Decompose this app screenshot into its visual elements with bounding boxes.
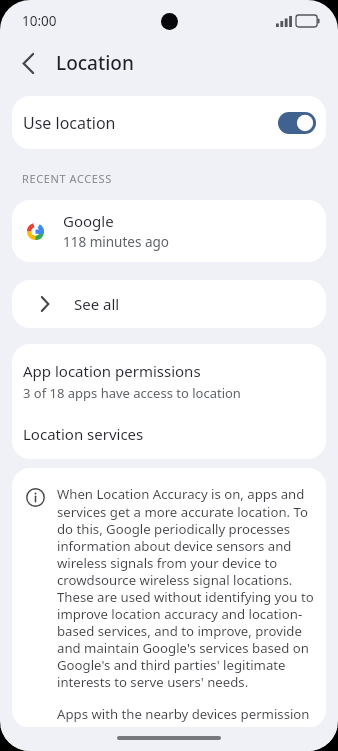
staticText: 3 of 18 apps have access to location bbox=[23, 384, 241, 402]
staticText: 10:00 bbox=[22, 12, 57, 30]
staticText: 118 minutes ago bbox=[63, 233, 169, 251]
staticText: Google bbox=[63, 211, 114, 231]
staticText: App location permissions bbox=[23, 361, 201, 381]
button[interactable]: Location services bbox=[12, 408, 326, 459]
staticText: RECENT ACCESS bbox=[22, 171, 112, 186]
button[interactable]: Use location bbox=[12, 96, 326, 149]
staticText: Apps with the nearby devices permission bbox=[57, 705, 310, 723]
button[interactable]: See all bbox=[12, 280, 326, 328]
staticText: Location services bbox=[23, 424, 144, 444]
button[interactable]: App location permissions bbox=[12, 344, 326, 408]
staticText: See all bbox=[74, 294, 120, 314]
staticText: Use location bbox=[23, 112, 116, 134]
staticText: When Location Accuracy is on, apps and s… bbox=[57, 485, 320, 690]
button[interactable]: Google bbox=[12, 200, 326, 262]
staticText: Location bbox=[56, 50, 134, 76]
button[interactable]: Back bbox=[11, 46, 45, 80]
